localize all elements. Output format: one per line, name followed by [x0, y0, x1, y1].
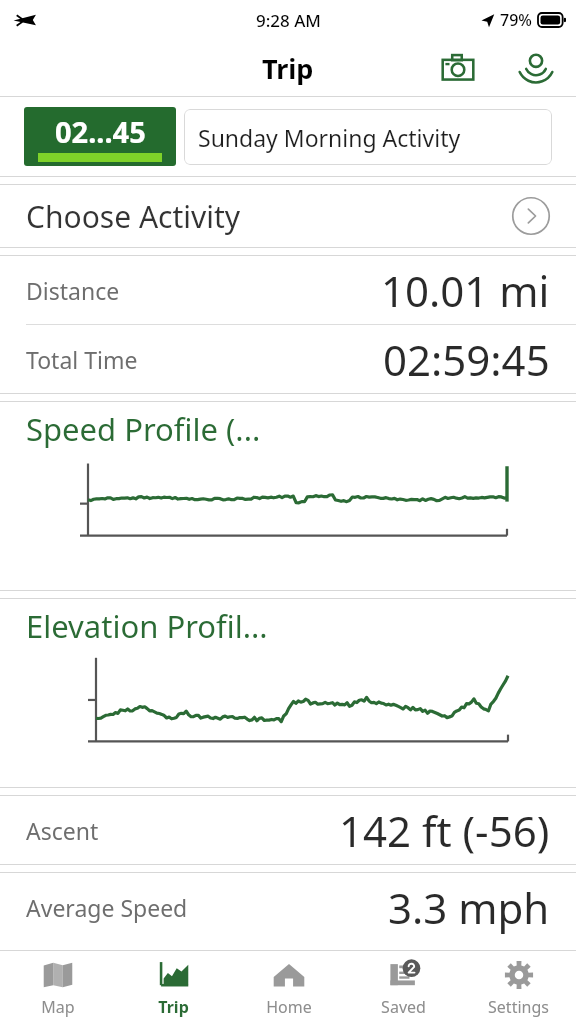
- staticText: Home: [266, 996, 312, 1018]
- staticText: Ascent: [26, 815, 99, 846]
- staticText: Speed Profile (...: [26, 408, 261, 450]
- button[interactable]: Choose Activity: [0, 185, 576, 247]
- staticText: Distance: [26, 275, 120, 306]
- button[interactable]: Speed Profile (...: [0, 402, 576, 590]
- staticText: Sunday Morning Activity: [198, 122, 461, 153]
- staticText: Elevation Profil...: [26, 605, 268, 647]
- staticText: 3.3 mph: [388, 879, 550, 936]
- button[interactable]: Distance: [0, 256, 576, 324]
- button[interactable]: Take photo: [432, 42, 484, 94]
- staticText: Average Speed: [26, 892, 188, 923]
- button[interactable]: Trip: [116, 951, 231, 1024]
- staticText: 142 ft (-56): [339, 802, 550, 859]
- staticText: 79%: [500, 9, 532, 31]
- button[interactable]: Live tracking: [510, 42, 562, 94]
- staticText: 10.01 mi: [381, 262, 550, 319]
- staticText: Trip: [158, 996, 189, 1018]
- staticText: 9:28 AM: [256, 9, 321, 32]
- button[interactable]: Average Speed: [0, 873, 576, 941]
- button[interactable]: Elevation Profil...: [0, 599, 576, 787]
- staticText: Map: [41, 996, 75, 1018]
- staticText: Total Time: [26, 344, 138, 375]
- staticText: Trip: [262, 50, 314, 87]
- button[interactable]: Sunday Morning Activity: [184, 109, 552, 165]
- button[interactable]: Saved: [346, 951, 461, 1024]
- staticText: Settings: [488, 996, 549, 1018]
- staticText: Saved: [381, 996, 426, 1018]
- button[interactable]: Ascent: [0, 796, 576, 864]
- button[interactable]: 02...45: [24, 107, 176, 166]
- staticText: 02:59:45: [383, 331, 550, 388]
- button[interactable]: Map: [0, 951, 116, 1024]
- button[interactable]: Home: [231, 951, 346, 1024]
- button[interactable]: Total Time: [0, 325, 576, 393]
- staticText: Choose Activity: [26, 196, 241, 237]
- button[interactable]: Settings: [461, 951, 576, 1024]
- staticText: 02...45: [55, 112, 146, 151]
